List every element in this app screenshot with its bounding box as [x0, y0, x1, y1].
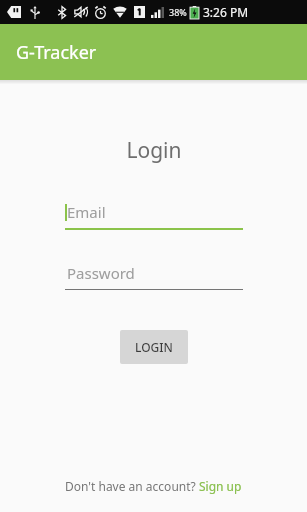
staticText: LOGIN: [135, 339, 173, 355]
button[interactable]: Password: [65, 262, 243, 290]
staticText: Login: [126, 136, 182, 165]
button[interactable]: LOGIN: [120, 330, 188, 364]
button[interactable]: Sign up: [199, 478, 242, 494]
staticText: 3:26 PM: [203, 4, 249, 20]
staticText: Don't have an account?: [65, 478, 199, 494]
button[interactable]: Email: [65, 201, 243, 230]
staticText: G-Tracker: [16, 40, 97, 65]
staticText: Email: [67, 202, 106, 222]
staticText: Sign up: [199, 478, 242, 494]
staticText: 38%: [169, 6, 187, 18]
staticText: Password: [67, 263, 135, 283]
